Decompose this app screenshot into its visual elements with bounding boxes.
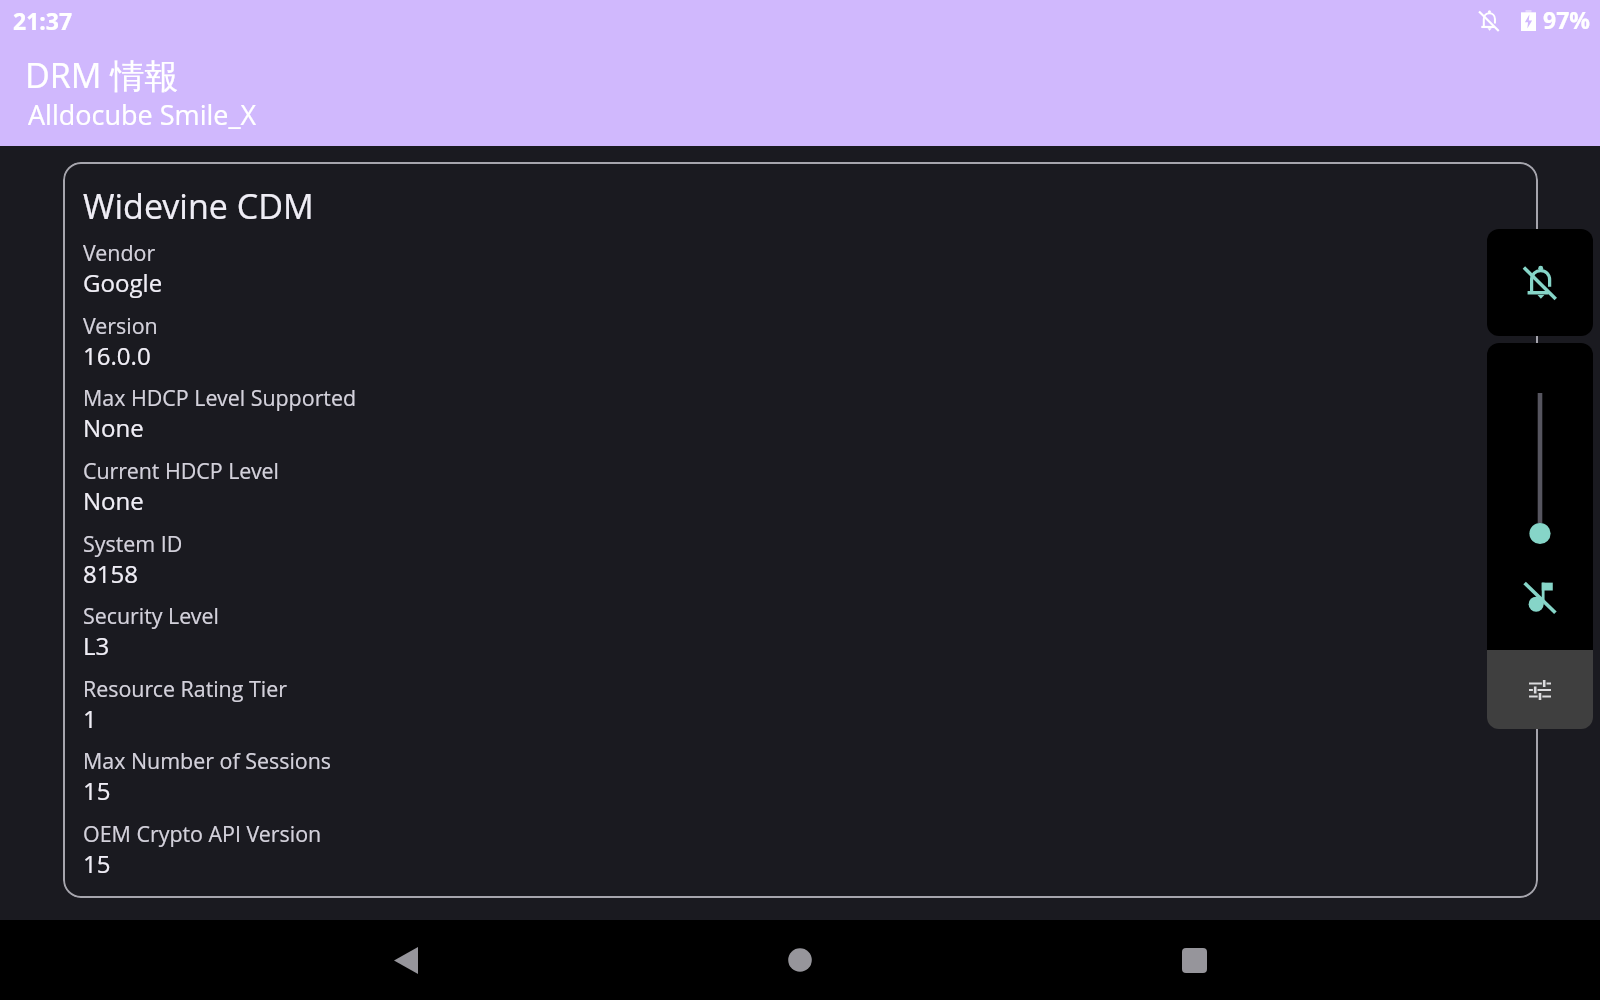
staticText: Version xyxy=(83,311,158,340)
button[interactable]: Media volume slider xyxy=(1487,343,1593,650)
staticText: None xyxy=(83,484,144,517)
staticText: 15 xyxy=(83,774,111,807)
staticText: Current HDCP Level xyxy=(83,456,280,485)
staticText: 16.0.0 xyxy=(83,339,151,372)
staticText: 15 xyxy=(83,847,111,880)
staticText: Security Level xyxy=(83,601,219,630)
staticText: 8158 xyxy=(83,557,138,590)
staticText: Google xyxy=(83,266,163,299)
button[interactable]: Back xyxy=(209,920,603,1000)
staticText: 1 xyxy=(83,702,97,735)
staticText: None xyxy=(83,411,144,444)
staticText: Widevine CDM xyxy=(83,183,314,229)
staticText: L3 xyxy=(83,629,110,662)
button[interactable]: Recents xyxy=(997,920,1391,1000)
staticText: DRM 情報 xyxy=(25,52,179,98)
button[interactable]: Mute media xyxy=(1487,552,1593,642)
staticText: Alldocube Smile_X xyxy=(28,96,257,133)
button[interactable]: Notifications off xyxy=(1487,229,1593,336)
staticText: System ID xyxy=(83,529,183,558)
staticText: 97% xyxy=(1543,4,1590,35)
staticText: OEM Crypto API Version xyxy=(83,819,322,848)
button[interactable]: Sound settings xyxy=(1487,650,1593,729)
staticText: 21:37 xyxy=(13,5,73,36)
staticText: Max HDCP Level Supported xyxy=(83,383,357,412)
staticText: Resource Rating Tier xyxy=(83,674,287,703)
staticText: Vendor xyxy=(83,238,156,267)
button[interactable]: Home xyxy=(603,920,997,1000)
staticText: Max Number of Sessions xyxy=(83,746,332,775)
